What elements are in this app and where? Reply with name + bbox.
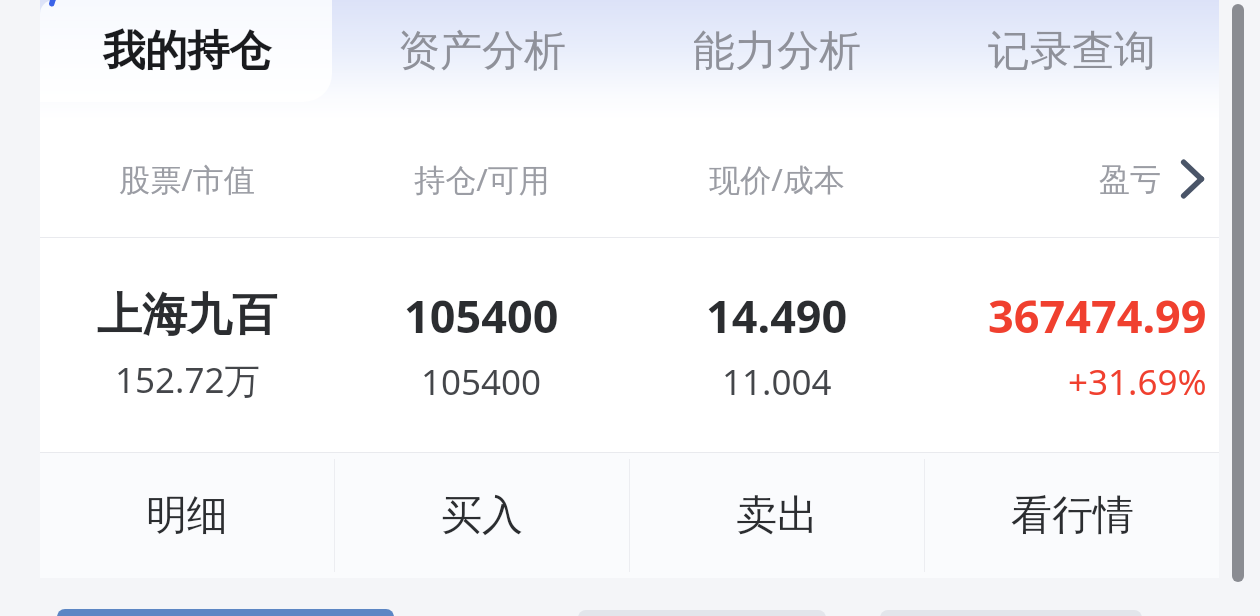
staticText: 买入	[441, 490, 523, 542]
button[interactable]: 股票/市值	[40, 120, 1219, 237]
staticText: 股票/市值	[119, 158, 255, 200]
staticText: 367474.99	[988, 285, 1207, 346]
button[interactable]: 上海九百	[40, 238, 1219, 452]
staticText: 持仓/可用	[414, 158, 550, 200]
button[interactable]: 买入	[335, 453, 629, 578]
staticText: 看行情	[1011, 490, 1134, 542]
button[interactable]: 我的持仓	[40, 0, 334, 102]
button[interactable]: 底部标签 1	[57, 609, 394, 616]
button[interactable]: 能力分析	[629, 0, 924, 102]
staticText: 105400	[421, 358, 542, 406]
button[interactable]: 看行情	[925, 453, 1219, 578]
button[interactable]: 明细	[40, 453, 334, 578]
staticText: 105400	[404, 285, 559, 346]
staticText: 卖出	[736, 490, 818, 542]
staticText: 152.72万	[115, 356, 260, 404]
staticText: 14.490	[706, 285, 848, 346]
staticText: 资产分析	[398, 25, 566, 78]
staticText: 明细	[146, 490, 228, 542]
button[interactable]: 资产分析	[334, 0, 629, 102]
staticText: +31.69%	[1068, 358, 1207, 406]
staticText: 上海九百	[97, 287, 277, 344]
staticText: 盈亏	[1099, 160, 1161, 199]
button[interactable]: 展开盈亏	[1175, 156, 1209, 202]
staticText: 能力分析	[693, 25, 861, 78]
button[interactable]: 记录查询	[924, 0, 1219, 102]
staticText: 我的持仓	[103, 25, 271, 78]
staticText: 记录查询	[988, 25, 1156, 78]
staticText: 现价/成本	[709, 158, 845, 200]
button[interactable]: 卖出	[630, 453, 924, 578]
staticText: 11.004	[722, 358, 832, 406]
